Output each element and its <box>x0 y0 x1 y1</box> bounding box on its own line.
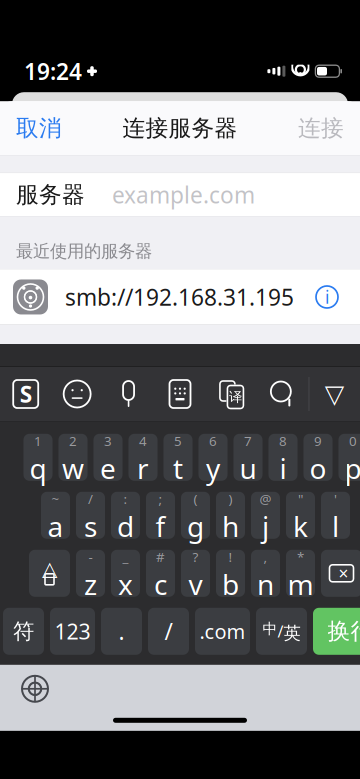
staticText: ▽ <box>325 380 344 408</box>
staticText: 英 <box>283 623 300 644</box>
staticText: p <box>344 450 360 487</box>
staticText: 取消 <box>16 114 62 142</box>
staticText: 7 <box>244 432 252 450</box>
button[interactable]: 8 <box>268 434 297 481</box>
staticText: d <box>117 508 134 545</box>
button[interactable]: 123 <box>50 608 95 655</box>
staticText: " <box>298 490 303 508</box>
staticText: c <box>154 566 167 603</box>
staticText: 2 <box>69 432 77 450</box>
button[interactable]: : <box>111 492 140 539</box>
staticText: n <box>257 566 274 603</box>
button[interactable]: 取消 <box>0 106 78 150</box>
button[interactable]: 更多信息 <box>312 282 342 312</box>
button[interactable]: 6 <box>198 434 227 481</box>
button[interactable]: smb://192.168.31.195 <box>0 269 360 324</box>
button[interactable]: # <box>146 550 175 597</box>
button[interactable]: 语音输入 <box>103 367 154 421</box>
button[interactable]: 7 <box>233 434 262 481</box>
staticText: _ <box>122 548 128 566</box>
staticText: m <box>287 566 313 603</box>
button[interactable]: 键盘设置 <box>154 367 206 421</box>
button[interactable]: 4 <box>128 434 157 481</box>
staticText: w <box>62 450 84 487</box>
staticText: 4 <box>139 432 147 450</box>
staticText: u <box>239 450 256 487</box>
staticText: 6 <box>209 432 217 450</box>
staticText: 换行 <box>327 617 360 645</box>
button[interactable]: ! <box>216 550 245 597</box>
staticText: 19:24 <box>24 56 82 86</box>
button[interactable]: 2 <box>58 434 87 481</box>
staticText: ' <box>334 490 337 508</box>
button[interactable]: - <box>76 550 105 597</box>
button[interactable]: 切换键盘 <box>8 666 62 712</box>
button[interactable]: / <box>148 608 189 655</box>
button[interactable]: " <box>286 492 315 539</box>
staticText: 服务器 <box>16 181 85 209</box>
button[interactable]: .com <box>195 608 250 655</box>
staticText: / <box>277 621 283 642</box>
staticText: ) <box>228 490 232 508</box>
button[interactable]: 符 <box>3 608 44 655</box>
button[interactable]: 输入法 <box>0 367 51 421</box>
staticText: .com <box>199 618 245 645</box>
button[interactable]: ? <box>181 550 210 597</box>
staticText: ! <box>228 548 232 566</box>
button[interactable]: 3 <box>93 434 122 481</box>
button[interactable]: ) <box>216 492 245 539</box>
button[interactable]: . <box>101 608 142 655</box>
staticText: h <box>222 508 239 545</box>
button[interactable]: 换行 <box>313 608 360 655</box>
staticText: a <box>47 508 63 545</box>
staticText: ; <box>158 490 162 508</box>
staticText: 5 <box>174 432 182 450</box>
button[interactable]: * <box>286 550 315 597</box>
button[interactable]: _ <box>111 550 140 597</box>
button[interactable]: 表情 <box>51 367 103 421</box>
staticText: 最近使用的服务器 <box>16 241 152 262</box>
staticText: 1 <box>34 432 42 450</box>
staticText: 123 <box>54 617 90 645</box>
staticText: 3 <box>104 432 112 450</box>
staticText: y <box>206 450 220 487</box>
staticText: x <box>118 566 133 603</box>
button[interactable]: , <box>251 550 280 597</box>
staticText: q <box>29 450 46 487</box>
button[interactable]: 搜索 <box>257 367 308 421</box>
button[interactable]: 0 <box>338 434 360 481</box>
staticText: / <box>88 490 93 508</box>
staticText: : <box>123 490 127 508</box>
staticText: z <box>84 566 97 603</box>
staticText: * <box>297 548 304 566</box>
button[interactable]: ' <box>321 492 350 539</box>
button[interactable]: ; <box>146 492 175 539</box>
staticText: ~ <box>51 490 59 508</box>
button[interactable]: 1 <box>23 434 52 481</box>
staticText: × <box>338 562 348 585</box>
button[interactable]: 9 <box>303 434 332 481</box>
staticText: example.com <box>112 180 255 210</box>
staticText: △ <box>42 557 57 580</box>
button[interactable]: 中 <box>256 608 307 655</box>
staticText: e <box>100 450 116 487</box>
staticText: # <box>156 548 165 566</box>
staticText: 符 <box>13 618 34 644</box>
button[interactable]: 翻译 <box>206 367 257 421</box>
staticText: ( <box>193 490 197 508</box>
button[interactable]: @ <box>251 492 280 539</box>
button[interactable]: 服务器 <box>0 173 360 216</box>
staticText: f <box>155 508 165 545</box>
staticText: S <box>20 379 32 409</box>
staticText: . <box>118 616 124 646</box>
button[interactable]: ( <box>181 492 210 539</box>
button[interactable]: ~ <box>41 492 70 539</box>
button[interactable]: 删除 <box>321 550 360 597</box>
button[interactable]: 收起键盘 <box>309 367 360 421</box>
button[interactable]: / <box>76 492 105 539</box>
button[interactable]: 连接 <box>282 106 360 150</box>
button[interactable]: 5 <box>163 434 192 481</box>
staticText: j <box>262 508 269 545</box>
staticText: 中 <box>262 620 277 638</box>
button[interactable]: Shift <box>29 550 70 597</box>
